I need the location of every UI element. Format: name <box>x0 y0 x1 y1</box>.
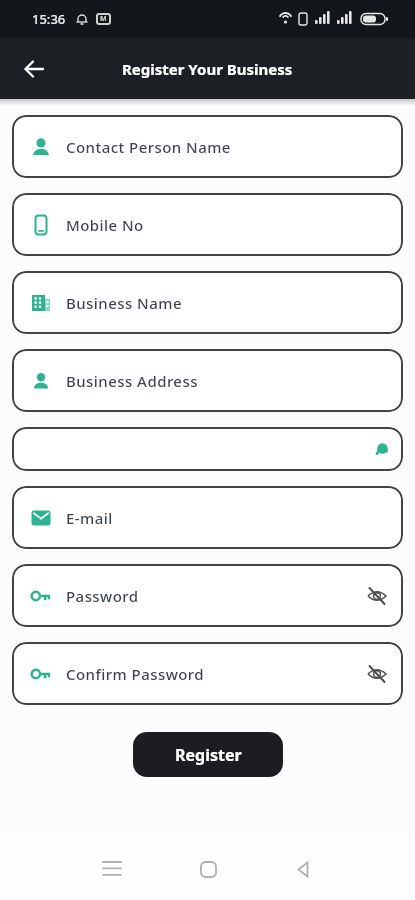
staticText: Business Name <box>66 293 182 313</box>
staticText: M <box>100 14 107 24</box>
staticText: Mobile No <box>66 215 144 235</box>
staticText: Confirm Password <box>66 664 205 684</box>
button[interactable]: Confirm Password <box>12 642 403 705</box>
button[interactable] <box>92 849 132 889</box>
button[interactable]: Business Name <box>12 271 403 334</box>
button[interactable] <box>188 849 228 889</box>
button[interactable]: Contact Person Name <box>12 115 403 178</box>
staticText: Business Address <box>66 371 198 391</box>
button[interactable] <box>283 849 323 889</box>
button[interactable]: Password <box>12 564 403 627</box>
staticText: 15:36 <box>32 10 66 28</box>
staticText: Register <box>175 744 242 766</box>
button[interactable] <box>14 49 54 89</box>
staticText: Password <box>66 586 139 606</box>
staticText: Register Your Business <box>122 59 293 79</box>
button[interactable]: E-mail <box>12 486 403 549</box>
button[interactable] <box>12 427 403 471</box>
button[interactable]: Business Address <box>12 349 403 412</box>
button[interactable]: Mobile No <box>12 193 403 256</box>
button[interactable]: Register <box>133 732 283 777</box>
staticText: E-mail <box>66 508 113 528</box>
staticText: Contact Person Name <box>66 137 231 157</box>
